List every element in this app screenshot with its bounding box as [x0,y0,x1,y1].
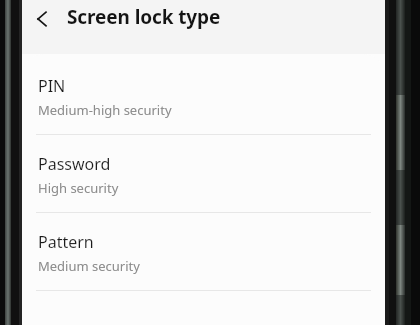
button[interactable]: PIN [22,54,385,134]
button[interactable]: Password [22,135,385,212]
staticText: PIN [38,75,66,97]
staticText: Medium-high security [38,101,172,119]
staticText: High security [38,179,119,197]
staticText: Screen lock type [67,4,221,30]
button[interactable]: Back [24,1,60,37]
staticText: Pattern [38,231,94,253]
staticText: Password [38,153,111,175]
staticText: Medium security [38,257,140,275]
button[interactable]: Pattern [22,213,385,290]
